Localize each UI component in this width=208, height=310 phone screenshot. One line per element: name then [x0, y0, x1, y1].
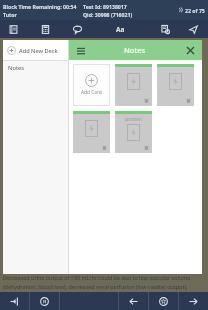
staticText: protien: [125, 116, 142, 123]
button[interactable]: Add New Deck: [3, 40, 68, 60]
button[interactable]: Delete: [73, 111, 110, 153]
staticText: Decreased urine output of <30 mL/hr coul…: [3, 274, 191, 281]
button[interactable]: Delete: [157, 64, 194, 106]
button[interactable]: Settings: [158, 22, 172, 36]
button[interactable]: Feedback: [70, 22, 84, 36]
button[interactable]: Notebook: [6, 22, 20, 36]
staticText: Test Id: 89138017: [83, 3, 127, 10]
staticText: Add Card: [81, 89, 102, 96]
button[interactable]: Exit: [0, 292, 29, 310]
button[interactable]: Pause: [30, 292, 59, 310]
button[interactable]: Next: [179, 292, 208, 310]
button[interactable]: Delete: [101, 144, 108, 151]
staticText: Add New Deck: [19, 47, 58, 55]
staticText: Notes: [124, 45, 146, 55]
button[interactable]: Notes: [3, 61, 68, 75]
button[interactable]: Delete: [143, 97, 150, 104]
button[interactable]: Delete: [143, 144, 150, 151]
staticText: Aa: [116, 25, 125, 34]
staticText: Tutor: [3, 11, 17, 18]
button[interactable]: Previous: [119, 292, 148, 310]
button[interactable]: protien: [115, 111, 152, 153]
button[interactable]: Aa: [112, 23, 129, 36]
button[interactable]: Close: [184, 44, 197, 57]
staticText: 22 of 75: [185, 7, 205, 14]
button[interactable]: Add Card: [73, 64, 110, 106]
button[interactable]: Delete: [115, 64, 152, 106]
button[interactable]: Delete: [185, 97, 192, 104]
staticText: (dehydration, blood loss), decreased ren…: [3, 283, 188, 290]
button[interactable]: Send: [186, 22, 200, 36]
button[interactable]: Menu: [74, 44, 87, 57]
button[interactable]: Flag: [149, 292, 178, 310]
staticText: Qid: 30998 (716021): [83, 11, 133, 18]
button[interactable]: Calculator: [38, 22, 52, 36]
staticText: Notes: [8, 64, 25, 72]
staticText: Block Time Remaining: 00:54: [3, 3, 77, 10]
